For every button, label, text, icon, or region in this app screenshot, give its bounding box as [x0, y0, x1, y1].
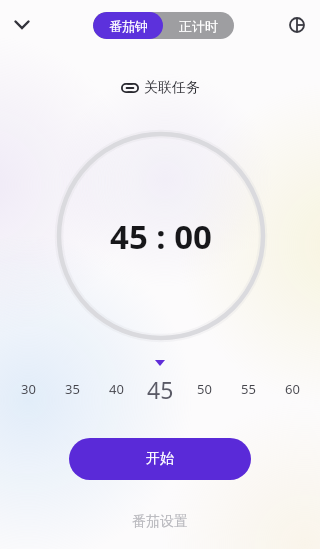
staticText: 50	[197, 380, 212, 398]
staticText: 番茄设置	[132, 513, 188, 531]
button[interactable]: 开始	[69, 438, 251, 480]
staticText: 开始	[146, 450, 174, 468]
staticText: 40	[109, 380, 124, 398]
button[interactable]: 番茄钟	[93, 12, 163, 39]
button[interactable]: 60	[270, 371, 314, 407]
button[interactable]	[286, 14, 308, 36]
staticText: 正计时	[179, 18, 218, 34]
staticText: 关联任务	[144, 79, 200, 97]
staticText: 55	[241, 380, 256, 398]
button[interactable]: 50	[182, 371, 226, 407]
staticText: 45 : 00	[110, 214, 212, 259]
staticText: 30	[21, 380, 36, 398]
staticText: 60	[285, 380, 300, 398]
button[interactable]	[10, 13, 34, 37]
button[interactable]: 55	[226, 371, 270, 407]
staticText: 35	[65, 380, 80, 398]
button[interactable]: 40	[94, 371, 138, 407]
button[interactable]: 45	[138, 371, 182, 407]
staticText: 番茄钟	[109, 18, 148, 34]
button[interactable]: 30	[6, 371, 50, 407]
button[interactable]: 35	[50, 371, 94, 407]
button[interactable]: 关联任务	[121, 78, 200, 98]
staticText: 45	[147, 374, 174, 405]
button[interactable]: 正计时	[163, 12, 234, 39]
button[interactable]: 番茄设置	[132, 513, 188, 531]
